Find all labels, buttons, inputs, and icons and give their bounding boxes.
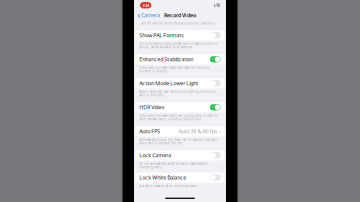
button[interactable]: Show PAL Formats <box>134 30 226 40</box>
button[interactable]: ‹ <box>137 10 160 20</box>
staticText: This is a television video format used i… <box>139 42 218 49</box>
staticText: Automatically reduce the frame rate to i… <box>139 138 217 145</box>
staticText: Camera <box>141 12 160 19</box>
button[interactable]: Action Mode Lower Light <box>134 78 226 88</box>
staticText: LTE <box>214 3 220 8</box>
button[interactable]: Lock Camera <box>134 150 226 160</box>
staticText: 3:44 <box>142 3 149 8</box>
staticText: ‹ <box>137 10 140 20</box>
staticText: Video and Cinematic mode will record vid… <box>139 114 218 121</box>
button[interactable]: Auto FPS <box>134 126 226 136</box>
staticText: HDR Video <box>139 104 164 111</box>
staticText: …and 4K with 60 fps for Digital resoluti… <box>139 22 215 25</box>
staticText: Enhanced Stabilization <box>139 56 193 63</box>
staticText: › <box>219 128 221 135</box>
staticText: Lock white balance while recording video… <box>139 184 198 188</box>
staticText: Show PAL Formats <box>139 32 184 39</box>
staticText: Do not automatically switch between came… <box>139 162 208 169</box>
staticText: Lock White Balance <box>139 174 186 181</box>
button[interactable]: HDR Video <box>134 102 226 112</box>
staticText: Action Mode Lower Light <box>139 80 198 87</box>
staticText: Record Video <box>164 12 196 19</box>
staticText: Video and Cinematic mode will stabilize … <box>139 66 209 73</box>
button[interactable]: Lock White Balance <box>134 172 226 183</box>
staticText: Auto 30 & 60 fps <box>178 128 217 135</box>
button[interactable]: Enhanced Stabilization <box>134 54 226 64</box>
staticText: Action mode will also work in less light… <box>139 90 216 97</box>
staticText: Lock Camera <box>139 152 171 159</box>
staticText: Auto FPS <box>139 128 160 135</box>
